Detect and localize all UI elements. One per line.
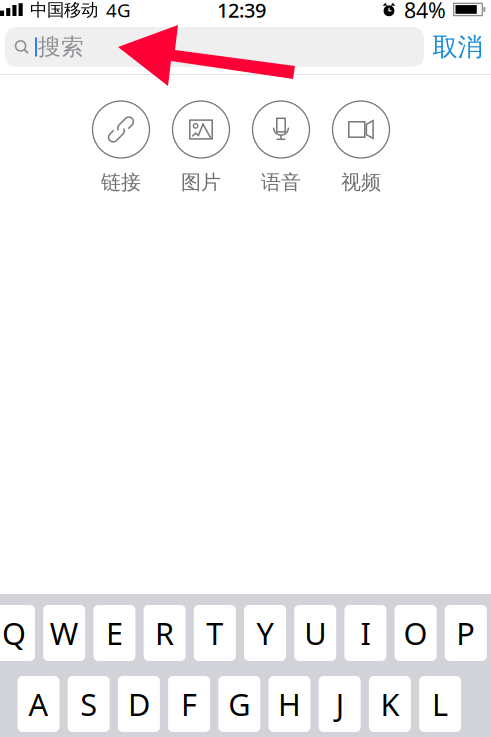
button[interactable]: O [395, 605, 437, 661]
staticText: I [360, 613, 370, 653]
button[interactable]: 语音 [241, 101, 321, 195]
button[interactable]: D [118, 676, 160, 732]
staticText: O [404, 613, 428, 653]
button[interactable]: Y [244, 605, 286, 661]
staticText: Y [256, 613, 273, 653]
staticText: 4G [106, 0, 131, 22]
button[interactable]: H [268, 676, 310, 732]
button[interactable]: W [43, 605, 85, 661]
button[interactable]: Q [0, 605, 35, 661]
staticText: P [456, 613, 475, 653]
staticText: 搜索 [38, 33, 84, 61]
button[interactable]: A [17, 676, 59, 732]
staticText: H [278, 684, 301, 724]
staticText: U [304, 613, 326, 653]
staticText: 视频 [341, 170, 381, 195]
staticText: 语音 [261, 170, 301, 195]
staticText: 12:39 [217, 0, 266, 23]
staticText: 链接 [101, 170, 141, 195]
staticText: A [28, 684, 48, 724]
staticText: 84% [404, 0, 446, 24]
button[interactable]: 视频 [321, 101, 401, 195]
staticText: W [50, 613, 79, 653]
button[interactable]: F [168, 676, 210, 732]
button[interactable]: T [194, 605, 236, 661]
button[interactable]: E [93, 605, 135, 661]
staticText: 取消 [432, 31, 482, 62]
staticText: F [181, 684, 197, 724]
button[interactable]: L [419, 676, 461, 732]
button[interactable]: U [294, 605, 336, 661]
button[interactable]: 取消 [424, 27, 491, 67]
button[interactable]: J [319, 676, 361, 732]
button[interactable]: I [344, 605, 386, 661]
button[interactable]: R [144, 605, 186, 661]
staticText: D [128, 684, 150, 724]
button[interactable]: P [445, 605, 487, 661]
staticText: E [106, 613, 123, 653]
button[interactable]: 搜索 [5, 27, 424, 67]
staticText: Q [2, 613, 26, 653]
button[interactable]: 链接 [81, 101, 161, 195]
staticText: R [155, 613, 174, 653]
staticText: 中国移动 [30, 0, 98, 21]
staticText: T [206, 613, 223, 653]
staticText: L [432, 684, 448, 724]
staticText: G [228, 684, 250, 724]
button[interactable]: S [68, 676, 110, 732]
button[interactable]: K [369, 676, 411, 732]
staticText: S [80, 684, 97, 724]
button[interactable]: G [218, 676, 260, 732]
staticText: J [336, 684, 344, 724]
staticText: K [380, 684, 399, 724]
staticText: 图片 [181, 170, 221, 195]
button[interactable]: 图片 [161, 101, 241, 195]
